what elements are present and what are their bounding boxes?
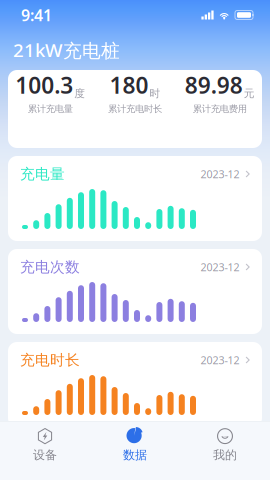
staticText: 累计充电时长	[108, 103, 162, 115]
staticText: 度	[74, 87, 85, 100]
staticText: 21kW充电桩	[13, 38, 120, 62]
button[interactable]: 设备	[0, 424, 90, 466]
staticText: 充电时长	[20, 351, 80, 369]
staticText: 2023-12	[201, 167, 240, 181]
staticText: 累计充电量	[28, 103, 73, 115]
staticText: 2023-12	[201, 353, 240, 367]
staticText: 数据	[123, 448, 147, 462]
staticText: 9:41	[21, 4, 52, 26]
button[interactable]: 我的	[180, 424, 270, 466]
staticText: 时	[149, 87, 160, 100]
staticText: 累计充电费用	[193, 103, 247, 115]
staticText: 180	[109, 70, 148, 100]
button[interactable]: 数据	[90, 424, 180, 466]
staticText: 元	[244, 87, 255, 100]
staticText: 我的	[213, 448, 237, 462]
staticText: 充电量	[20, 165, 65, 183]
staticText: 设备	[33, 448, 57, 462]
staticText: 2023-12	[201, 260, 240, 274]
staticText: 100.3	[15, 70, 73, 100]
staticText: 89.98	[185, 70, 243, 100]
staticText: 充电次数	[20, 258, 80, 276]
